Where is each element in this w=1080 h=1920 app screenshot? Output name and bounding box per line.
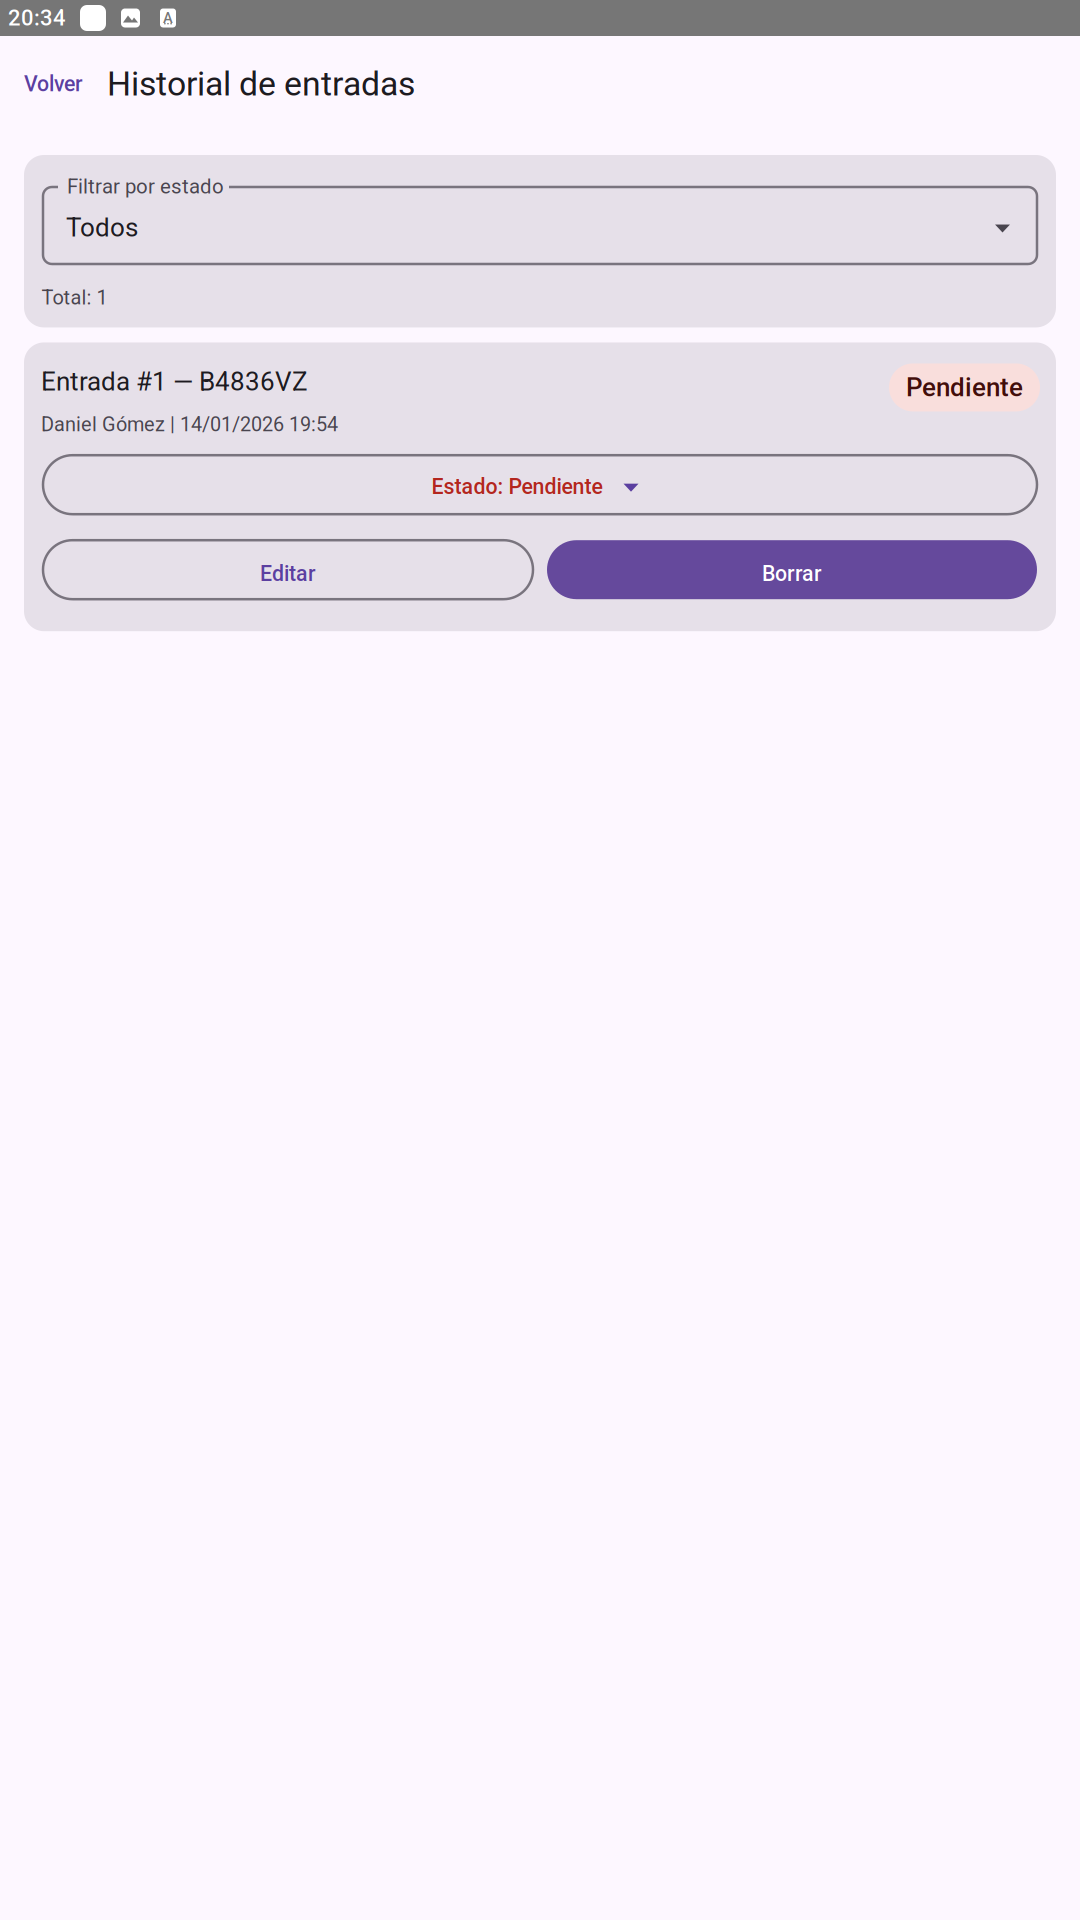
staticText: Pendiente [906, 372, 1023, 403]
staticText: Editar [260, 561, 316, 586]
button[interactable]: Todos [43, 187, 1037, 264]
staticText: Borrar [762, 561, 822, 586]
staticText: Entrada #1 — B4836VZ [41, 366, 308, 397]
staticText: Historial de entradas [107, 64, 415, 104]
button[interactable]: Estado: Pendiente [43, 455, 1037, 514]
staticText: 20:34 [8, 5, 66, 31]
button[interactable]: Editar [43, 540, 533, 599]
staticText: Volver [24, 71, 83, 96]
staticText: A [163, 9, 173, 27]
button[interactable]: Borrar [547, 540, 1037, 599]
staticText: Estado: Pendiente [431, 474, 602, 499]
button[interactable]: Volver [0, 57, 107, 110]
staticText: Filtrar por estado [67, 174, 224, 198]
staticText: Daniel Gómez | 14/01/2026 19:54 [41, 413, 338, 436]
staticText: Total: 1 [41, 286, 107, 309]
staticText: Todos [66, 212, 138, 243]
